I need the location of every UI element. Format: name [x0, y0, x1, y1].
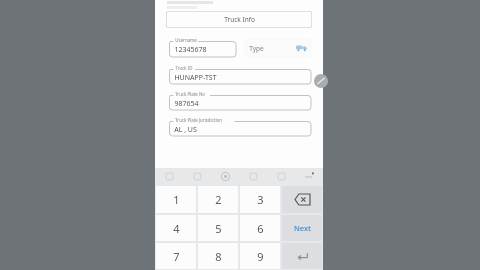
button[interactable]: Emoji — [155, 168, 183, 185]
button[interactable]: Username — [166, 38, 237, 58]
button[interactable]: 3 — [240, 186, 280, 213]
staticText: 6 — [257, 221, 264, 236]
staticText: Truck Info — [224, 15, 255, 24]
staticText: 9 — [257, 249, 264, 264]
button[interactable]: 2 — [198, 186, 238, 213]
button[interactable]: 6 — [240, 215, 280, 241]
staticText: 7 — [173, 249, 180, 264]
button[interactable]: Truck Info — [166, 11, 312, 28]
button[interactable]: Clipboard — [239, 168, 267, 185]
staticText: Truck ID — [175, 65, 193, 71]
staticText: AL , US — [174, 125, 197, 135]
staticText: 5 — [215, 221, 222, 236]
button[interactable]: 4 — [156, 215, 196, 241]
button[interactable]: 8 — [198, 243, 238, 269]
staticText: 1 — [173, 192, 180, 207]
button[interactable]: Settings — [211, 168, 239, 185]
button[interactable]: More options — [295, 168, 323, 185]
button[interactable]: GIF — [183, 168, 211, 185]
button[interactable]: Next — [282, 215, 322, 241]
button[interactable]: Truck Plate No — [166, 92, 312, 111]
button[interactable]: 9 — [240, 243, 280, 269]
button[interactable]: Enter — [282, 243, 322, 269]
button[interactable]: Truck Plate Jurisdiction — [166, 118, 312, 137]
staticText: Truck Plate Jurisdiction — [175, 117, 222, 123]
staticText: Type — [249, 44, 264, 53]
staticText: 2 — [215, 192, 222, 207]
button[interactable]: 5 — [198, 215, 238, 241]
button[interactable]: Backspace — [282, 186, 322, 213]
button[interactable]: 1 — [156, 186, 196, 213]
staticText: 4 — [173, 221, 180, 236]
staticText: HUNAPP-TST — [174, 73, 217, 83]
staticText: 3 — [257, 192, 264, 207]
staticText: Username — [175, 37, 197, 43]
button[interactable]: Truck ID — [166, 66, 312, 85]
staticText: Truck Plate No — [175, 91, 205, 97]
staticText: Next — [294, 223, 311, 233]
button[interactable]: Type — [244, 38, 312, 58]
staticText: 987654 — [174, 99, 199, 109]
staticText: 8 — [215, 249, 222, 264]
button[interactable]: 7 — [156, 243, 196, 269]
button[interactable]: Translate — [267, 168, 295, 185]
staticText: 12345678 — [174, 45, 207, 55]
